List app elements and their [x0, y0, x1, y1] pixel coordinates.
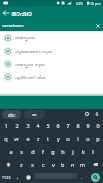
button[interactable]: v [48, 158, 58, 171]
button[interactable]: w [11, 132, 22, 145]
button[interactable]: ?123 [0, 171, 13, 183]
button[interactable]: Clear text [93, 20, 103, 31]
staticText: എന്താണ് വിശ [15, 74, 46, 80]
staticText: y [57, 135, 60, 142]
staticText: o [86, 135, 90, 142]
button[interactable]: ക [24, 110, 45, 119]
staticText: 1 [4, 122, 8, 129]
button[interactable]: p [93, 132, 103, 145]
button[interactable]: g [48, 145, 58, 158]
button[interactable]: Delete [88, 158, 103, 171]
staticText: 4 [36, 122, 40, 129]
button[interactable]: d [27, 145, 38, 158]
staticText: w [14, 135, 19, 142]
staticText: നമസ്കാരം [15, 35, 36, 40]
staticText: നമസ്കാര സുഖ [15, 61, 45, 67]
staticText: u [66, 135, 70, 142]
button[interactable]: i [73, 132, 83, 145]
button[interactable]: a [5, 145, 16, 158]
staticText: j [72, 148, 74, 155]
button[interactable]: 9 [83, 119, 93, 132]
button[interactable]: y [53, 132, 63, 145]
staticText: ക [32, 112, 37, 117]
staticText: 0 [96, 122, 100, 129]
button[interactable]: 2 [11, 119, 22, 132]
button[interactable]: Emoji [23, 171, 34, 183]
staticText: s [20, 148, 23, 155]
button[interactable]: നമസ്കാരം [0, 31, 103, 44]
staticText: d [31, 148, 35, 155]
staticText: 64% [76, 1, 84, 6]
button[interactable]: 7 [63, 119, 73, 132]
button[interactable]: സുഖമാണോ സുഖ [0, 44, 103, 57]
button[interactable]: 4 [33, 119, 43, 132]
staticText: n [71, 161, 75, 168]
button[interactable]: abc [2, 110, 21, 119]
staticText: 7:16 pm [87, 1, 101, 6]
staticText: ?123 [2, 175, 11, 180]
button[interactable]: 0 [93, 119, 103, 132]
staticText: e [26, 135, 30, 142]
button[interactable]: t [43, 132, 53, 145]
button[interactable]: q [0, 132, 11, 145]
staticText: 8 [76, 122, 80, 129]
button[interactable]: u [63, 132, 73, 145]
button[interactable]: j [68, 145, 78, 158]
button[interactable]: Search [91, 173, 100, 182]
button[interactable]: l [88, 145, 98, 158]
button[interactable]: . [77, 171, 87, 183]
button[interactable]: x [27, 158, 38, 171]
staticText: h [61, 148, 65, 155]
staticText: namaskaram [2, 23, 24, 28]
button[interactable]: Shift [0, 158, 16, 171]
staticText: 2 [15, 122, 19, 129]
button[interactable]: 8 [73, 119, 83, 132]
button[interactable]: 6 [53, 119, 63, 132]
button[interactable]: , [13, 171, 23, 183]
staticText: abc [8, 112, 16, 118]
staticText: . [81, 174, 83, 181]
button[interactable]: h [58, 145, 68, 158]
button[interactable]: e [22, 132, 33, 145]
button[interactable]: 5 [43, 119, 53, 132]
staticText: 6 [56, 122, 60, 129]
button[interactable]: k [78, 145, 88, 158]
button[interactable]: r [33, 132, 43, 145]
staticText: g [51, 148, 55, 155]
staticText: b [61, 161, 65, 168]
button[interactable]: f [38, 145, 48, 158]
staticText: ഭാഷാ [11, 10, 32, 18]
button[interactable]: 3 [22, 119, 33, 132]
button[interactable]: s [16, 145, 27, 158]
staticText: , [17, 174, 19, 181]
staticText: 5 [46, 122, 50, 129]
staticText: r [37, 135, 40, 142]
staticText: c [42, 161, 45, 168]
button[interactable]: Settings [82, 109, 92, 119]
staticText: f [42, 148, 44, 155]
button[interactable]: m [78, 158, 88, 171]
staticText: x [31, 161, 34, 168]
staticText: i [77, 135, 79, 142]
staticText: l [92, 148, 94, 155]
button[interactable]: Back [0, 6, 11, 20]
staticText: p [96, 135, 100, 142]
button[interactable]: z [16, 158, 27, 171]
button[interactable]: b [58, 158, 68, 171]
staticText: t [47, 135, 49, 142]
staticText: v [52, 161, 55, 168]
staticText: k [82, 148, 85, 155]
button[interactable]: എന്താണ് വിശ [0, 70, 103, 83]
button[interactable]: Voice input [92, 109, 102, 119]
staticText: 3 [26, 122, 30, 129]
staticText: സുഖമാണോ സുഖ [15, 48, 52, 54]
button[interactable]: c [38, 158, 48, 171]
button[interactable]: o [83, 132, 93, 145]
button[interactable]: n [68, 158, 78, 171]
staticText: a [9, 148, 13, 155]
button[interactable]: നമസ്കാര സുഖ [0, 57, 103, 70]
button[interactable]: 1 [0, 119, 11, 132]
staticText: q [4, 135, 8, 142]
staticText: z [20, 161, 23, 168]
